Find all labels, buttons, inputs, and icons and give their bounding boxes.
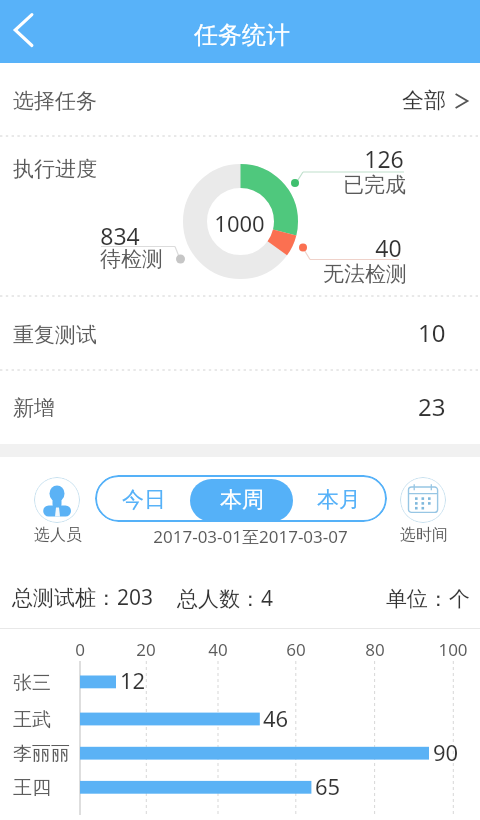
staticText: 选择任务 <box>13 88 97 114</box>
button[interactable]: Back <box>0 0 48 63</box>
button[interactable] <box>0 63 480 133</box>
staticText: 新增 <box>13 395 55 421</box>
staticText: 选时间 <box>400 525 448 545</box>
staticText: 本周 <box>220 486 264 514</box>
staticText: 40 <box>208 638 228 661</box>
staticText: 80 <box>365 638 385 661</box>
staticText: 王武 <box>13 708 51 732</box>
button[interactable] <box>95 476 190 521</box>
staticText: 46 <box>263 703 289 733</box>
staticText: 总测试桩：203 <box>12 583 154 612</box>
staticText: 张三 <box>13 671 51 695</box>
staticText: 0 <box>75 638 85 661</box>
staticText: 重复测试 <box>13 322 97 348</box>
staticText: 王四 <box>13 776 51 800</box>
staticText: 20 <box>136 638 156 661</box>
staticText: 12 <box>120 665 146 695</box>
button[interactable] <box>0 370 480 444</box>
button[interactable]: 选人员 <box>34 477 81 543</box>
staticText: 65 <box>315 771 341 801</box>
staticText: 今日 <box>122 486 166 514</box>
staticText: 100 <box>438 638 468 661</box>
staticText: 全部 <box>402 87 446 115</box>
staticText: 李丽丽 <box>13 742 70 766</box>
staticText: 单位：个 <box>386 586 470 612</box>
staticText: 834 <box>100 220 140 251</box>
staticText: 126 <box>364 143 404 174</box>
button[interactable]: 选时间 <box>400 477 447 543</box>
staticText: 无法检测 <box>323 261 407 287</box>
staticText: 执行进度 <box>13 156 97 182</box>
staticText: 已完成 <box>343 172 406 198</box>
staticText: 1000 <box>214 208 265 238</box>
staticText: 总人数：4 <box>177 584 274 613</box>
staticText: 任务统计 <box>194 20 290 50</box>
staticText: 10 <box>418 316 446 349</box>
staticText: 2017-03-01至2017-03-07 <box>153 525 348 548</box>
staticText: 40 <box>375 232 402 263</box>
staticText: 本月 <box>317 486 361 514</box>
staticText: 待检测 <box>100 246 163 272</box>
staticText: 23 <box>418 390 446 423</box>
button[interactable] <box>190 479 293 522</box>
staticText: 选人员 <box>34 525 82 545</box>
button[interactable] <box>293 476 385 521</box>
button[interactable] <box>0 296 480 370</box>
staticText: 90 <box>433 737 459 767</box>
staticText: 60 <box>286 638 306 661</box>
